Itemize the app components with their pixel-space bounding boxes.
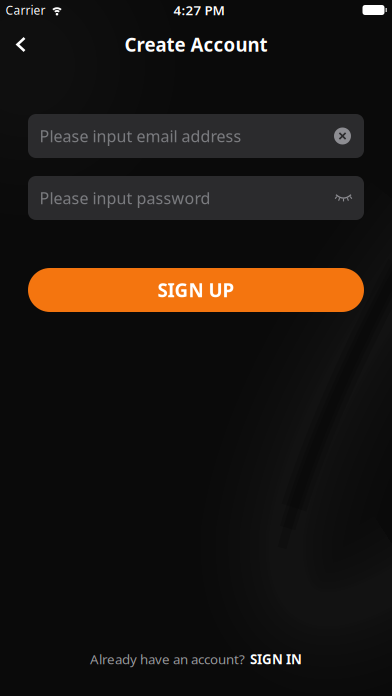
staticText: Create Account <box>124 32 267 57</box>
staticText: SIGN IN <box>250 650 302 668</box>
staticText: SIGN UP <box>157 278 234 302</box>
staticText: Already have an account? <box>90 650 245 668</box>
button[interactable]: Show password <box>335 193 352 202</box>
staticText: Please input password <box>39 187 210 209</box>
button[interactable]: Already have an account? <box>90 650 302 668</box>
button[interactable]: Back <box>0 22 38 66</box>
button[interactable]: Clear text <box>334 127 351 144</box>
button[interactable]: Please input email address <box>28 114 364 158</box>
button[interactable]: Please input password <box>28 176 364 220</box>
staticText: Please input email address <box>39 125 241 147</box>
button[interactable]: SIGN UP <box>28 268 364 312</box>
staticText: 4:27 PM <box>173 1 224 19</box>
staticText: Carrier <box>5 2 45 18</box>
